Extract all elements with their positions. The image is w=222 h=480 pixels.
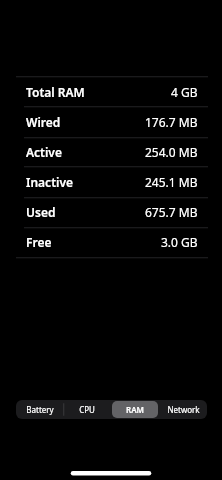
staticText: Used [26,204,56,220]
staticText: Free [26,234,52,250]
staticText: RAM [126,404,144,415]
button[interactable]: Wired [16,106,208,137]
staticText: Network [167,404,200,415]
staticText: 245.1 MB [145,174,198,190]
staticText: 4 GB [171,84,198,100]
staticText: 254.0 MB [145,144,198,160]
button[interactable]: Free [16,226,208,257]
button[interactable]: RAM [112,401,158,418]
staticText: Wired [26,114,61,130]
button[interactable]: Battery [17,401,62,418]
staticText: 3.0 GB [161,234,198,250]
staticText: Inactive [26,174,73,190]
button[interactable]: Active [16,136,208,167]
staticText: Active [26,144,62,160]
button[interactable]: Network [160,401,206,418]
staticText: CPU [79,404,95,415]
staticText: 675.7 MB [145,204,198,220]
staticText: 176.7 MB [145,114,198,130]
staticText: Total RAM [26,84,85,100]
button[interactable]: Inactive [16,166,208,197]
button[interactable]: Used [16,196,208,227]
button[interactable]: Total RAM [16,76,208,107]
staticText: Battery [26,404,54,415]
button[interactable]: CPU [64,401,110,418]
